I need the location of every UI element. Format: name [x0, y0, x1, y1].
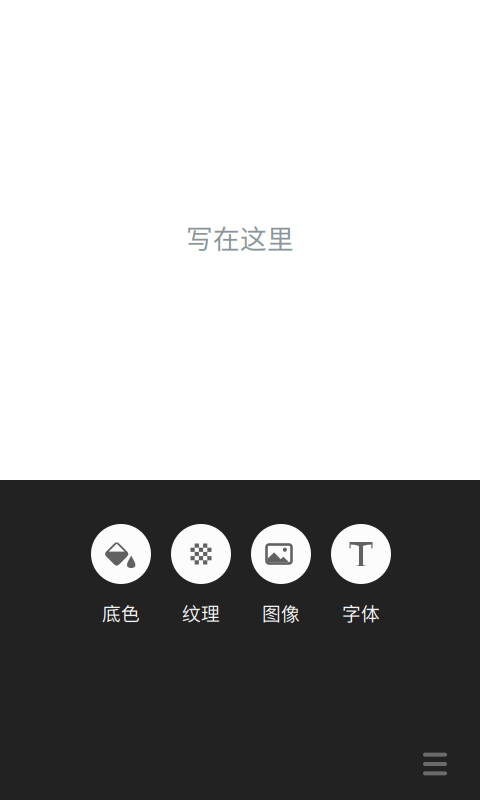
- staticText: 底色: [102, 599, 140, 626]
- button[interactable]: 字体: [321, 524, 401, 626]
- button[interactable]: Menu: [412, 741, 458, 787]
- staticText: 写在这里: [186, 218, 294, 256]
- staticText: 图像: [262, 599, 300, 626]
- button[interactable]: 图像: [241, 524, 321, 626]
- button[interactable]: 底色: [81, 524, 161, 626]
- button[interactable]: 写在这里: [0, 0, 480, 480]
- button[interactable]: 纹理: [161, 524, 241, 626]
- staticText: 纹理: [182, 599, 220, 626]
- staticText: 字体: [342, 599, 380, 626]
